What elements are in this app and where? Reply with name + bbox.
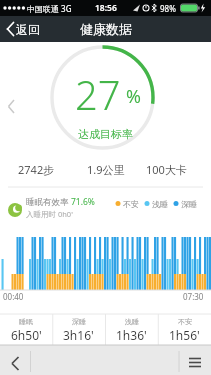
staticText: 健康数据 [80, 21, 132, 37]
staticText: 1h36' [116, 327, 147, 343]
staticText: 睡眠 [19, 317, 33, 326]
button[interactable]: 100大卡 [131, 156, 201, 182]
staticText: 18:56 [95, 2, 117, 14]
button[interactable]: 浅睡 [152, 198, 168, 209]
button[interactable]: 深睡 [181, 198, 197, 209]
staticText: 深睡 [181, 199, 197, 209]
button[interactable] [180, 346, 211, 375]
staticText: 1.9公里 [87, 162, 125, 177]
button[interactable]: 不安 [123, 198, 139, 209]
staticText: 不安 [178, 317, 192, 326]
staticText: 100大卡 [146, 162, 187, 177]
staticText: % [126, 84, 141, 109]
staticText: 入睡用时 0h0' [26, 209, 73, 219]
button[interactable]: 睡眠 [0, 314, 52, 345]
staticText: 98% [160, 3, 176, 14]
button[interactable]: 不安 [158, 314, 211, 345]
staticText: 深睡 [72, 317, 86, 326]
staticText: 浅睡 [152, 199, 168, 209]
staticText: 达成目标率 [78, 127, 133, 141]
button[interactable]: 1.9公里 [71, 156, 141, 182]
staticText: 返回 [16, 22, 40, 37]
staticText: 3h16' [63, 327, 94, 343]
staticText: 睡眠有效率 [26, 196, 71, 207]
staticText: 00:40 [3, 291, 24, 302]
staticText: 浅睡 [125, 317, 139, 326]
button[interactable]: 返回 [0, 16, 50, 42]
staticText: 07:30 [183, 291, 204, 302]
staticText: 71.6% [71, 196, 95, 207]
staticText: 6h50' [11, 327, 42, 343]
button[interactable]: 2742步 [1, 156, 71, 182]
staticText: 1h56' [169, 327, 200, 343]
staticText: 2742步 [18, 162, 55, 177]
staticText: 不安 [123, 199, 139, 209]
staticText: 中国联通 3G [27, 3, 72, 14]
button[interactable] [0, 346, 30, 375]
staticText: 27 [75, 67, 121, 112]
button[interactable]: 深睡 [52, 314, 105, 345]
button[interactable]: 浅睡 [105, 314, 158, 345]
